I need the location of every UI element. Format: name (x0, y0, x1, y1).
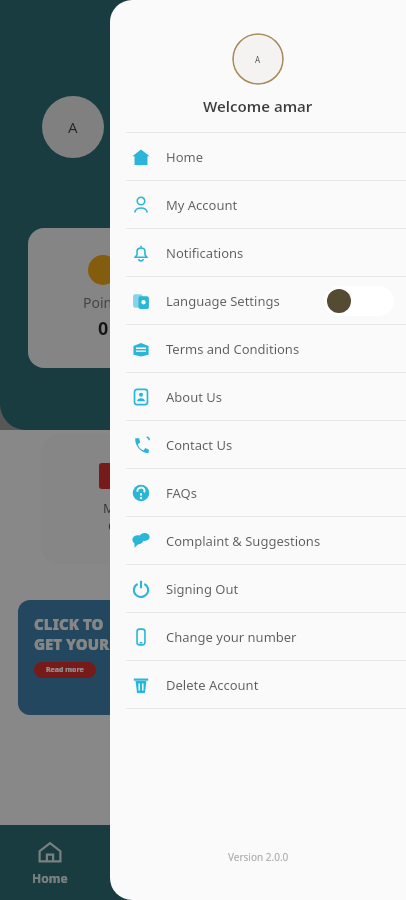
staticText: FAQs (166, 484, 197, 502)
staticText: C (108, 517, 117, 535)
staticText: Terms and Conditions (166, 340, 300, 358)
staticText: Points (83, 293, 124, 312)
staticText: Language Settings (166, 292, 280, 310)
staticText: A (255, 54, 261, 65)
button[interactable]: My Account (110, 181, 406, 228)
staticText: Change your number (166, 628, 297, 646)
staticText: Version 2.0.0 (228, 850, 289, 864)
staticText: My Account (166, 196, 238, 214)
button[interactable]: Terms and Conditions (110, 325, 406, 372)
staticText: Complaint & Suggestions (166, 532, 321, 550)
button[interactable]: Contact Us (110, 421, 406, 468)
staticText: A (68, 117, 78, 137)
staticText: CLICK TO (34, 614, 104, 634)
button[interactable]: Home (110, 133, 406, 180)
button[interactable]: Home (0, 839, 100, 886)
staticText: 0 (98, 316, 109, 341)
staticText: Welcome amar (203, 96, 313, 116)
staticText: GET YOUR P (34, 634, 123, 654)
staticText: Signing Out (166, 580, 239, 598)
button[interactable]: Language toggle (324, 286, 394, 316)
button[interactable]: Notifications (110, 229, 406, 276)
button[interactable]: Signing Out (110, 565, 406, 612)
staticText: Contact Us (166, 436, 233, 454)
button[interactable]: About Us (110, 373, 406, 420)
staticText: Read more (46, 665, 84, 675)
button[interactable]: Delete Account (110, 661, 406, 708)
staticText: About Us (166, 388, 223, 406)
staticText: Delete Account (166, 676, 259, 694)
staticText: Notifications (166, 244, 244, 262)
button[interactable]: Boo (100, 839, 200, 886)
button[interactable]: Change your number (110, 613, 406, 660)
staticText: Home (32, 870, 68, 886)
staticText: Home (166, 148, 203, 166)
button[interactable]: FAQs (110, 469, 406, 516)
staticText: My (103, 499, 122, 517)
button[interactable]: Complaint & Suggestions (110, 517, 406, 564)
button[interactable]: Language Settings (110, 277, 406, 324)
